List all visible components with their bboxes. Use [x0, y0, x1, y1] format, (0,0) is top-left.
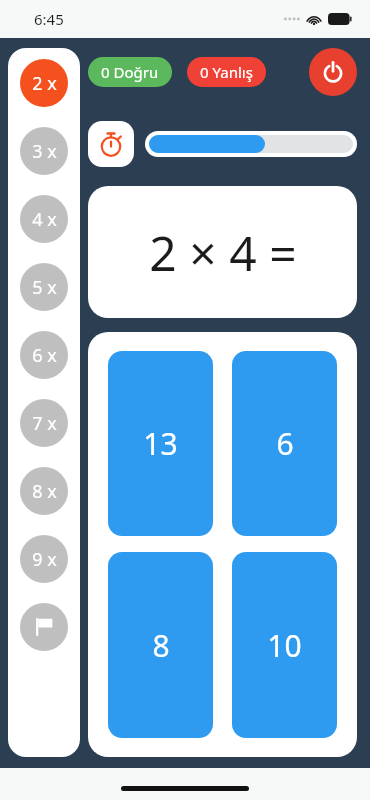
button[interactable]: 8: [108, 552, 213, 738]
staticText: 2 × 4 =: [149, 220, 297, 285]
button[interactable]: Power: [309, 48, 357, 96]
button[interactable]: 9 x: [20, 535, 68, 583]
staticText: 5 x: [32, 275, 57, 300]
staticText: 0 Doğru: [101, 62, 159, 82]
staticText: 7 x: [32, 411, 57, 436]
staticText: 8: [152, 625, 170, 666]
staticText: 13: [143, 423, 178, 464]
staticText: 6 x: [32, 343, 57, 368]
staticText: 9 x: [32, 547, 57, 572]
button[interactable]: 6 x: [20, 331, 68, 379]
button[interactable]: 7 x: [20, 399, 68, 447]
button[interactable]: 10: [232, 552, 337, 738]
staticText: 8 x: [32, 479, 57, 504]
button[interactable]: 2 x: [20, 59, 68, 107]
button[interactable]: Timer: [88, 121, 134, 167]
button[interactable]: 4 x: [20, 195, 68, 243]
staticText: 3 x: [32, 139, 57, 164]
staticText: 6: [276, 423, 294, 464]
button[interactable]: 0 Yanlış: [187, 57, 266, 87]
button[interactable]: 5 x: [20, 263, 68, 311]
staticText: 0 Yanlış: [200, 62, 253, 82]
button[interactable]: 0 Doğru: [88, 57, 172, 87]
staticText: 10: [267, 625, 302, 666]
button[interactable]: 13: [108, 351, 213, 536]
staticText: 4 x: [32, 207, 57, 232]
staticText: 2 x: [32, 71, 57, 96]
button[interactable]: 3 x: [20, 127, 68, 175]
staticText: 6:45: [34, 9, 64, 29]
button[interactable]: 8 x: [20, 467, 68, 515]
button[interactable]: 6: [232, 351, 337, 536]
button[interactable]: Flag: [20, 603, 68, 651]
